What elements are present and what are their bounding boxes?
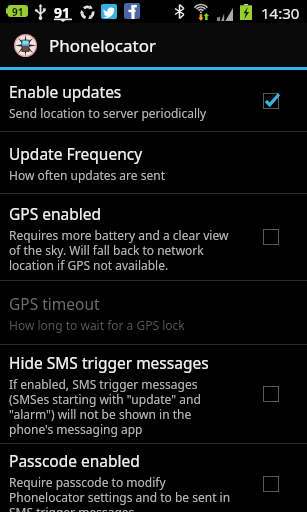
staticText: 14:30	[261, 3, 300, 23]
staticText: Update Frequency	[9, 143, 143, 164]
staticText: Require passcode to modify Phonelocator …	[9, 474, 231, 512]
staticText: How long to wait for a GPS lock	[9, 317, 185, 333]
button[interactable]: GPS enabled	[0, 194, 307, 280]
button[interactable]: Update Frequency	[0, 132, 307, 193]
staticText: If enabled, SMS trigger messages (SMSes …	[9, 376, 201, 437]
staticText: Hide SMS trigger messages	[9, 352, 209, 373]
button[interactable]: Enable updates	[0, 70, 307, 131]
button[interactable]: GPS timeout	[0, 281, 307, 344]
staticText: 91	[54, 3, 71, 22]
staticText: GPS enabled	[9, 203, 102, 224]
button[interactable]: Passcode enabled	[0, 444, 307, 512]
staticText: Passcode enabled	[9, 450, 140, 471]
staticText: Requires more battery and a clear view o…	[9, 227, 229, 273]
staticText: How often updates are sent	[9, 167, 165, 183]
staticText: 91	[12, 5, 24, 17]
staticText: GPS timeout	[9, 293, 100, 314]
button[interactable]: Hide SMS trigger messages	[0, 345, 307, 443]
staticText: Phonelocator	[49, 34, 156, 57]
staticText: Send location to server periodically	[9, 105, 207, 121]
staticText: Enable updates	[9, 81, 122, 102]
